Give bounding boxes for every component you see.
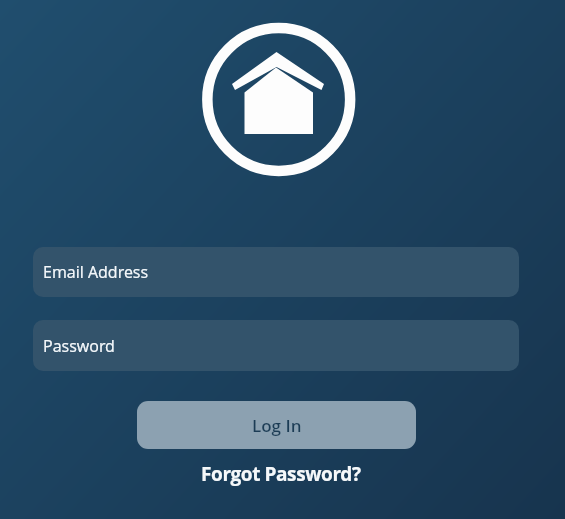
button[interactable]: Email Address (33, 247, 519, 297)
button[interactable]: Log In (137, 401, 416, 449)
staticText: Password (43, 335, 115, 357)
staticText: Log In (252, 414, 302, 437)
button[interactable]: Forgot Password? (201, 461, 361, 487)
button[interactable]: Password (33, 320, 519, 371)
staticText: Email Address (43, 261, 149, 283)
